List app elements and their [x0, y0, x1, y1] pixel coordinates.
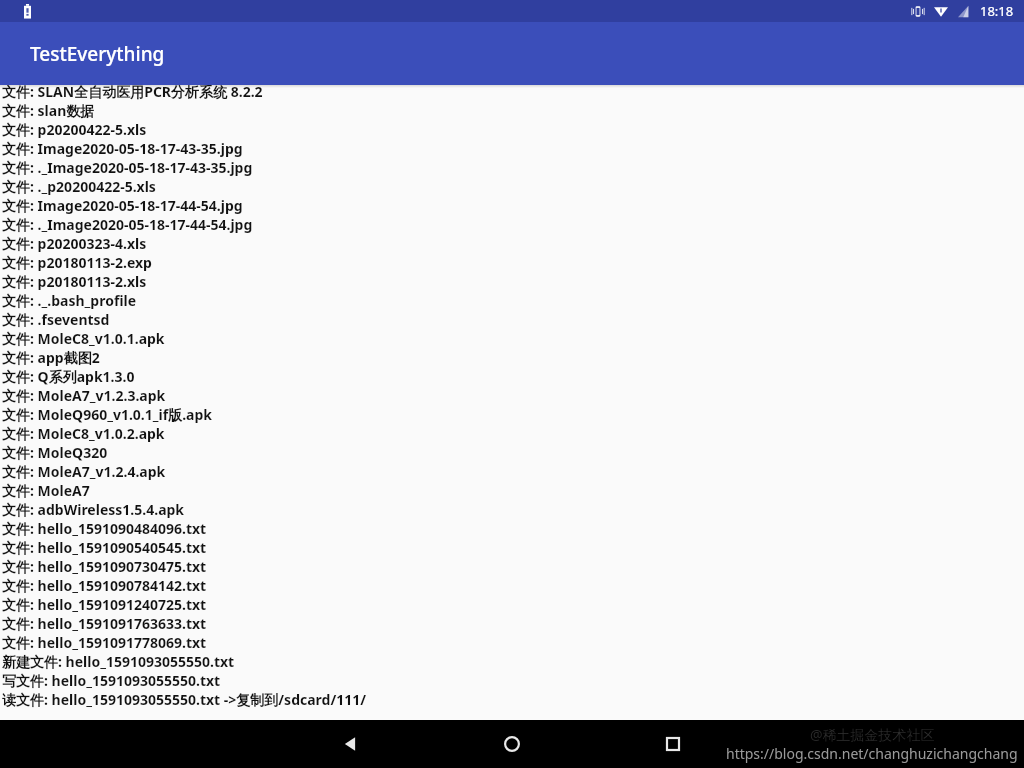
staticText: TestEverything [30, 41, 165, 67]
staticText: 文件: ._.bash_profile [2, 291, 137, 310]
staticText: https://blog.csdn.net/changhuzichangchan… [726, 744, 1018, 763]
staticText: 写文件: hello_1591093055550.txt [2, 671, 221, 690]
staticText: 文件: MoleA7_v1.2.3.apk [2, 386, 166, 405]
staticText: 文件: MoleA7 [2, 481, 90, 500]
staticText: 18:18 [980, 2, 1014, 20]
staticText: 文件: MoleQ960_v1.0.1_if版.apk [2, 405, 212, 424]
staticText: 文件: MoleQ320 [2, 443, 108, 462]
staticText: 文件: Q系列apk1.3.0 [2, 367, 135, 386]
staticText: 文件: Image2020-05-18-17-44-54.jpg [2, 196, 243, 215]
staticText: 文件: hello_1591091240725.txt [2, 595, 207, 614]
staticText: 文件: hello_1591090484096.txt [2, 519, 207, 538]
staticText: 文件: p20200422-5.xls [2, 120, 147, 139]
staticText: @稀土掘金技术社区 [810, 725, 935, 744]
button[interactable]: Home [480, 720, 544, 768]
staticText: 文件: SLAN全自动医用PCR分析系统 8.2.2 [2, 85, 263, 101]
staticText: 新建文件: hello_1591093055550.txt [2, 652, 235, 671]
staticText: 文件: hello_1591091763633.txt [2, 614, 207, 633]
staticText: 文件: MoleA7_v1.2.4.apk [2, 462, 166, 481]
button[interactable]: 文件: SLAN全自动医用PCR分析系统 8.2.2 [0, 85, 1024, 709]
button[interactable]: Back [318, 720, 382, 768]
staticText: 文件: p20180113-2.xls [2, 272, 147, 291]
staticText: 文件: hello_1591090540545.txt [2, 538, 207, 557]
staticText: 文件: ._Image2020-05-18-17-44-54.jpg [2, 215, 253, 234]
staticText: 文件: slan数据 [2, 101, 95, 120]
staticText: 文件: p20200323-4.xls [2, 234, 147, 253]
staticText: 读文件: hello_1591093055550.txt ->复制到/sdcar… [2, 690, 367, 709]
staticText: 文件: Image2020-05-18-17-43-35.jpg [2, 139, 243, 158]
staticText: 文件: MoleC8_v1.0.1.apk [2, 329, 165, 348]
staticText: 文件: .fseventsd [2, 310, 110, 329]
staticText: 文件: app截图2 [2, 348, 100, 367]
staticText: 文件: hello_1591091778069.txt [2, 633, 207, 652]
staticText: 文件: hello_1591090730475.txt [2, 557, 207, 576]
staticText: 文件: hello_1591090784142.txt [2, 576, 207, 595]
staticText: 文件: MoleC8_v1.0.2.apk [2, 424, 165, 443]
button[interactable]: Recent apps [641, 720, 705, 768]
staticText: 文件: adbWireless1.5.4.apk [2, 500, 185, 519]
staticText: 文件: p20180113-2.exp [2, 253, 152, 272]
staticText: 文件: ._Image2020-05-18-17-43-35.jpg [2, 158, 253, 177]
staticText: 文件: ._p20200422-5.xls [2, 177, 156, 196]
